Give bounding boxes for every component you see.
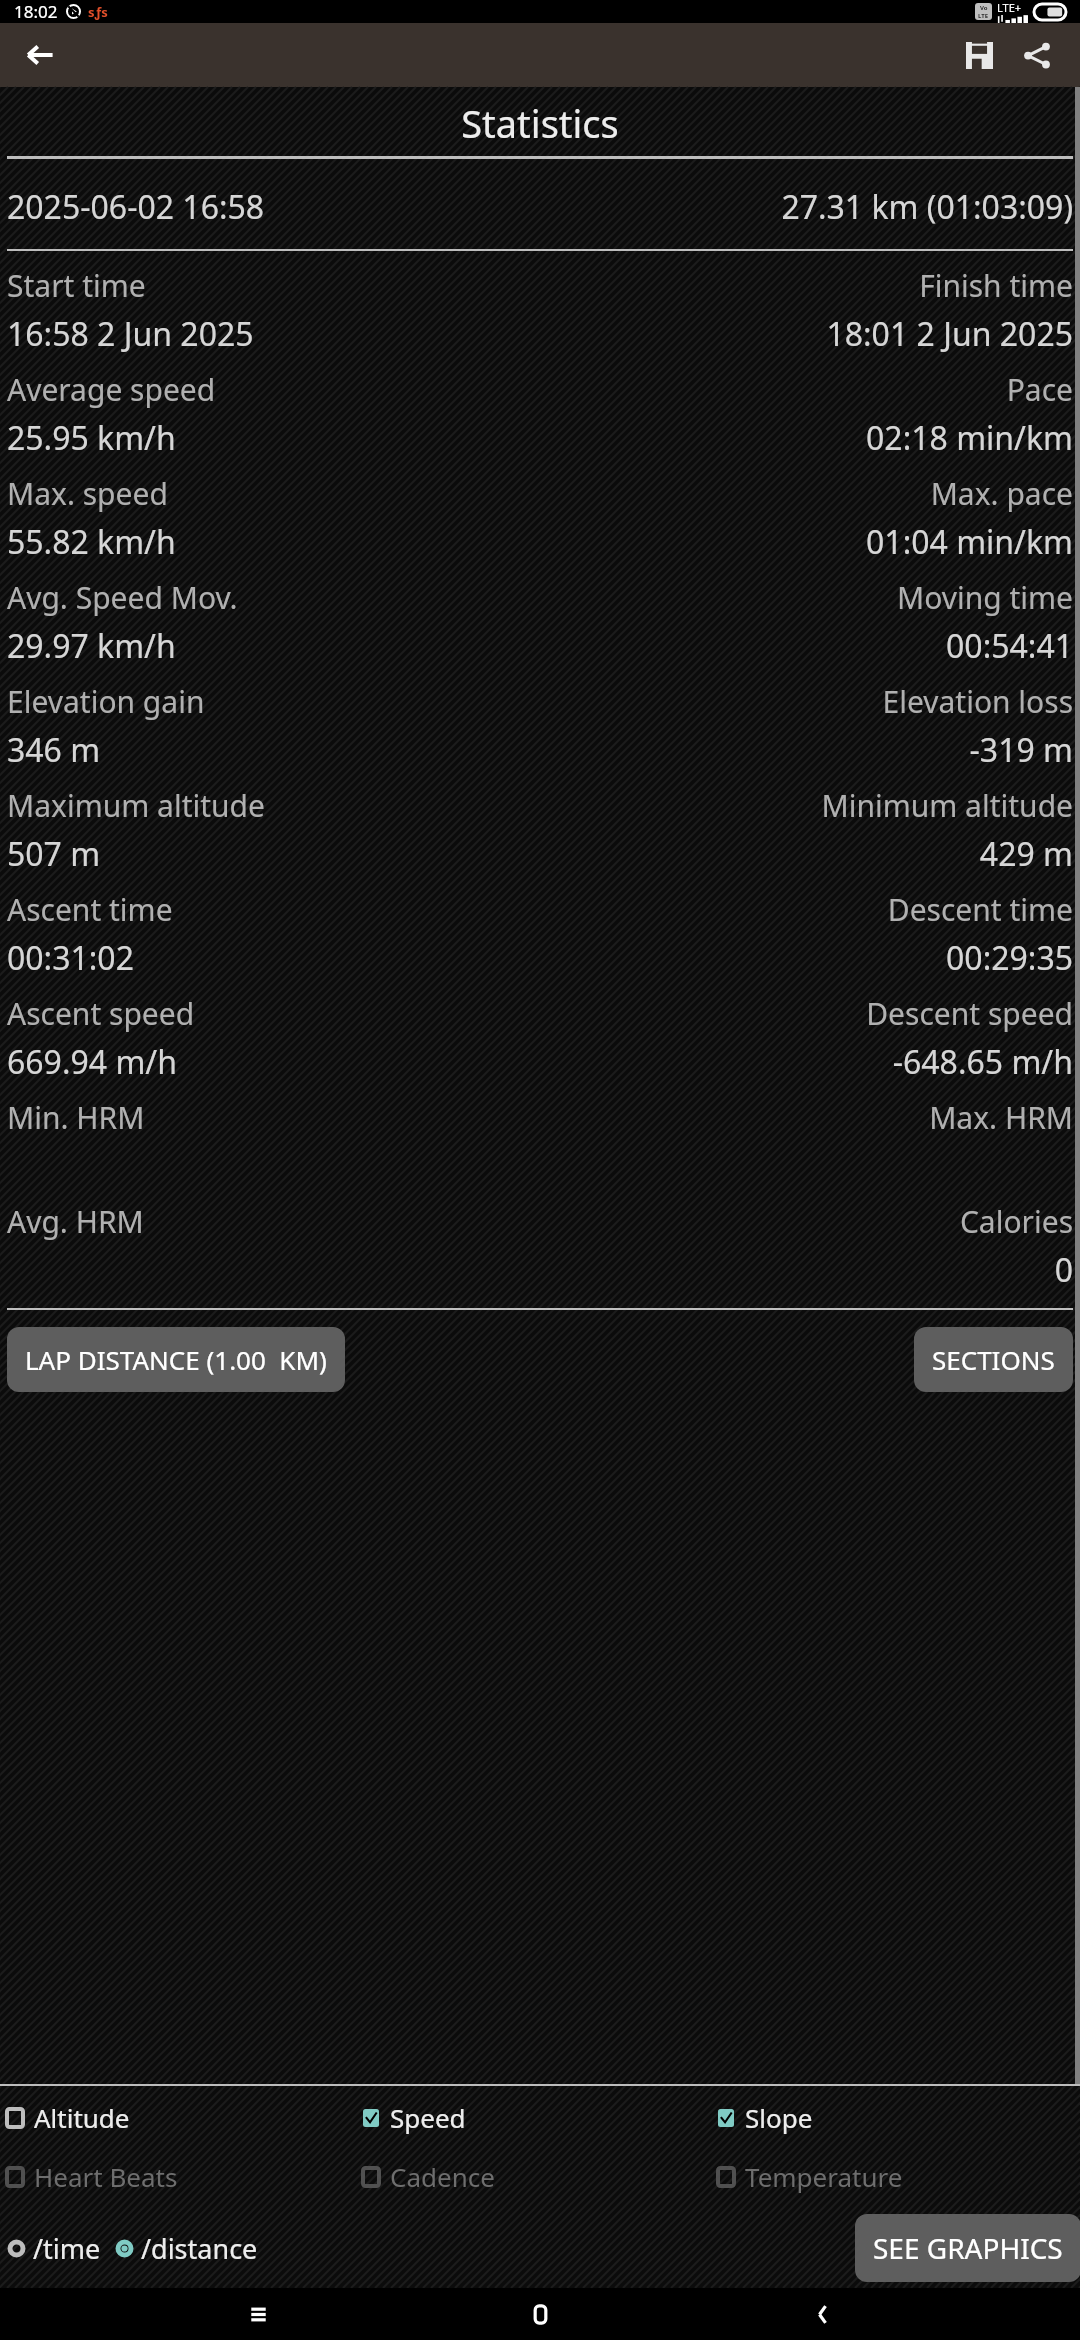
button[interactable]: Cadence: [363, 2159, 718, 2194]
staticText: Start time: [7, 265, 540, 306]
staticText: Slope: [745, 2100, 813, 2135]
staticText: 25.95 km/h: [7, 416, 540, 460]
staticText: Minimum altitude: [540, 785, 1073, 826]
button[interactable]: Save: [950, 26, 1008, 84]
button[interactable]: Recent apps: [234, 2290, 282, 2338]
button[interactable]: Temperature: [718, 2159, 1073, 2194]
staticText: Avg. Speed Mov.: [7, 577, 540, 618]
staticText: Avg. HRM: [7, 1201, 540, 1242]
staticText: LTE+: [997, 0, 1022, 15]
button[interactable]: Back: [798, 2290, 846, 2338]
staticText: /distance: [141, 2230, 258, 2267]
button[interactable]: LAP DISTANCE (1.00 KM): [7, 1327, 345, 1392]
button[interactable]: Speed: [363, 2100, 718, 2135]
staticText: Max. HRM: [540, 1097, 1073, 1138]
staticText: Min. HRM: [7, 1097, 540, 1138]
staticText: sƒs: [88, 3, 108, 21]
staticText: 429 m: [540, 832, 1073, 876]
staticText: Max. pace: [540, 473, 1073, 514]
staticText: Average speed: [7, 369, 540, 410]
staticText: 669.94 m/h: [7, 1040, 540, 1084]
staticText: Moving time: [540, 577, 1073, 618]
staticText: SEE GRAPHICS: [873, 2229, 1063, 2267]
staticText: Descent speed: [540, 993, 1073, 1034]
staticText: 02:18 min/km: [540, 416, 1073, 460]
button[interactable]: Altitude: [7, 2100, 363, 2135]
staticText: Vo: [980, 4, 988, 12]
staticText: 29.97 km/h: [7, 624, 540, 668]
staticText: [7, 1144, 540, 1188]
staticText: LTE: [978, 12, 989, 20]
staticText: 00:54:41: [540, 624, 1073, 668]
staticText: Heart Beats: [34, 2159, 178, 2194]
staticText: 18:02: [14, 0, 58, 23]
staticText: SECTIONS: [932, 1342, 1055, 1377]
button[interactable]: Share: [1008, 26, 1066, 84]
staticText: Maximum altitude: [7, 785, 540, 826]
staticText: 55.82 km/h: [7, 520, 540, 564]
staticText: 27.31 km (01:03:09): [540, 185, 1073, 229]
staticText: 01:04 min/km: [540, 520, 1073, 564]
staticText: Calories: [540, 1201, 1073, 1242]
staticText: Elevation loss: [540, 681, 1073, 722]
staticText: Ascent time: [7, 889, 540, 930]
staticText: Statistics: [7, 97, 1073, 149]
button[interactable]: Slope: [718, 2100, 1073, 2135]
staticText: Elevation gain: [7, 681, 540, 722]
staticText: 00:29:35: [540, 936, 1073, 980]
staticText: Max. speed: [7, 473, 540, 514]
staticText: 0: [540, 1248, 1073, 1292]
staticText: Temperature: [745, 2159, 903, 2194]
button[interactable]: SECTIONS: [914, 1327, 1073, 1392]
staticText: [540, 1144, 1073, 1188]
staticText: 2025-06-02 16:58: [7, 185, 540, 229]
staticText: 00:31:02: [7, 936, 540, 980]
staticText: Finish time: [540, 265, 1073, 306]
staticText: Speed: [390, 2100, 466, 2135]
button[interactable]: SEE GRAPHICS: [855, 2214, 1080, 2282]
button[interactable]: Home: [516, 2290, 564, 2338]
staticText: LAP DISTANCE (1.00 KM): [25, 1342, 327, 1377]
button[interactable]: /distance: [115, 2230, 258, 2267]
staticText: 507 m: [7, 832, 540, 876]
button[interactable]: /time: [7, 2230, 101, 2267]
staticText: [7, 1248, 540, 1292]
button[interactable]: Heart Beats: [7, 2159, 363, 2194]
staticText: Pace: [540, 369, 1073, 410]
staticText: 16:58 2 Jun 2025: [7, 312, 540, 356]
staticText: -648.65 m/h: [540, 1040, 1073, 1084]
staticText: Ascent speed: [7, 993, 540, 1034]
staticText: /time: [33, 2230, 101, 2267]
staticText: Altitude: [34, 2100, 130, 2135]
staticText: -319 m: [540, 728, 1073, 772]
staticText: 346 m: [7, 728, 540, 772]
staticText: Descent time: [540, 889, 1073, 930]
button[interactable]: Back: [14, 29, 66, 81]
staticText: 18:01 2 Jun 2025: [540, 312, 1073, 356]
staticText: Cadence: [390, 2159, 495, 2194]
